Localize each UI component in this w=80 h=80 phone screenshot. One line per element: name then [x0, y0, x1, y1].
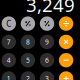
staticText: 4 [7, 56, 11, 65]
staticText: 2 [26, 74, 30, 80]
button[interactable]: Result 3,249 [0, 0, 75, 12]
staticText: 3 [45, 74, 49, 80]
staticText: 6 [45, 56, 49, 65]
button[interactable]: 5 [21, 53, 35, 67]
button[interactable]: 2 [21, 71, 35, 80]
button[interactable]: 9 [40, 35, 54, 49]
staticText: 3,249 [26, 0, 75, 17]
staticText: 5 [26, 56, 30, 65]
button[interactable]: Add [59, 71, 73, 80]
button[interactable]: 4 [2, 53, 16, 67]
staticText: C [6, 18, 11, 29]
button[interactable]: Clear [2, 16, 16, 31]
staticText: 9 [45, 37, 49, 46]
button[interactable]: Divide [59, 16, 73, 31]
button[interactable]: 7 [2, 35, 16, 49]
button[interactable]: Multiply [59, 35, 73, 49]
button[interactable]: 8 [21, 35, 35, 49]
staticText: 1 [7, 74, 11, 80]
button[interactable]: Subtract [59, 53, 73, 67]
button[interactable]: 6 [40, 53, 54, 67]
button[interactable]: Percent [40, 16, 54, 31]
button[interactable]: 1 [2, 71, 16, 80]
staticText: 8 [26, 37, 30, 46]
button[interactable]: 3 [40, 71, 54, 80]
button[interactable]: Plus minus [21, 16, 35, 31]
staticText: 7 [7, 37, 11, 46]
